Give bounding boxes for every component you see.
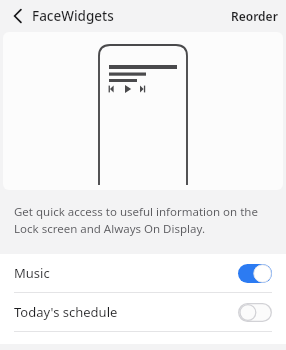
staticText: Get quick access to useful information o…	[14, 204, 268, 236]
staticText: Today's schedule	[14, 303, 238, 321]
button[interactable]: Back	[6, 4, 30, 28]
button[interactable]: Today's schedule	[0, 293, 286, 331]
button[interactable]: Reorder	[223, 4, 286, 28]
button[interactable]: Off	[238, 303, 272, 322]
staticText: Reorder	[231, 8, 278, 24]
staticText: Music	[14, 264, 238, 282]
staticText: FaceWidgets	[32, 7, 114, 25]
button[interactable]: On	[238, 264, 272, 283]
button[interactable]: Music	[0, 254, 286, 292]
